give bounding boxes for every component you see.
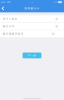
button[interactable]: 银行卡号 [0,23,64,30]
staticText: 下一步 [27,54,36,57]
button[interactable]: 下一步 [23,52,41,58]
staticText: 84% [54,1,57,3]
staticText: 添加银行卡 [24,7,39,10]
button[interactable]: Back [0,5,7,12]
button[interactable]: 银行预留手机号 [0,30,64,37]
staticText: 银行卡号 [3,25,15,28]
button[interactable]: 持卡人姓名 [0,15,64,22]
staticText: 10:24 [30,1,34,3]
staticText: 银行预留手机号 [3,32,24,35]
staticText: 持卡人姓名 [3,17,18,21]
staticText: 中国移动 [6,1,10,3]
